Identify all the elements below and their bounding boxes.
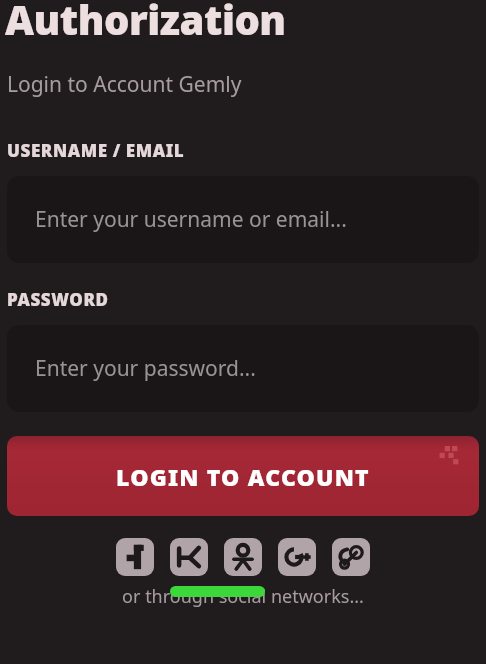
staticText: USERNAME / EMAIL (7, 139, 185, 162)
button[interactable]: VKontakte (170, 538, 208, 576)
staticText: Enter your password... (35, 354, 256, 383)
staticText: or through social networks... (0, 584, 486, 609)
staticText: PASSWORD (7, 288, 109, 311)
button[interactable]: LOGIN TO ACCOUNT (7, 436, 479, 516)
staticText: Enter your username or email... (35, 205, 347, 234)
button[interactable]: Enter your username or email... (7, 176, 479, 263)
button[interactable]: Steam (332, 538, 370, 576)
button[interactable]: Enter your password... (7, 325, 479, 412)
staticText: LOGIN TO ACCOUNT (116, 461, 370, 492)
button[interactable]: Google Plus (278, 538, 316, 576)
button[interactable]: Facebook (116, 538, 154, 576)
staticText: Login to Account Gemly (7, 70, 242, 99)
staticText: Authorization (5, 0, 286, 40)
button[interactable]: Odnoklassniki (224, 538, 262, 576)
